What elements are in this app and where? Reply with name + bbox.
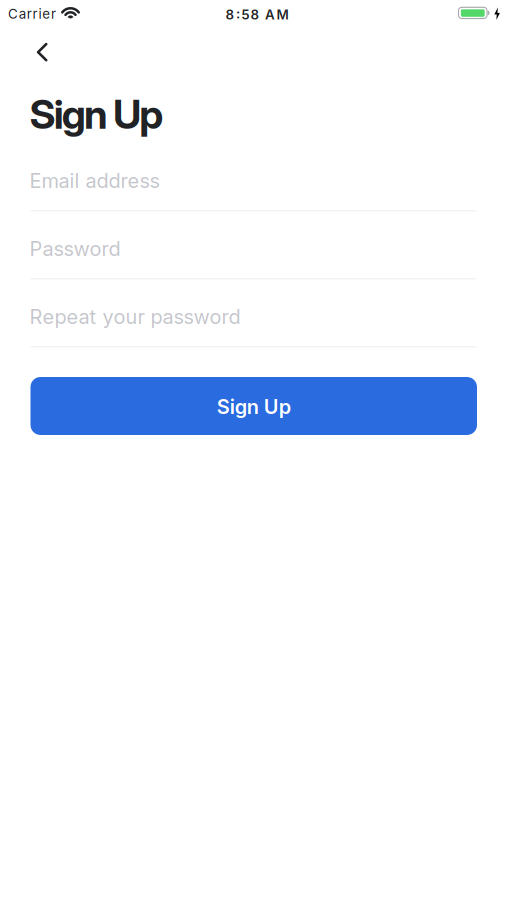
- textField[interactable]: Email address: [30, 168, 476, 211]
- staticText: Password: [29, 237, 120, 260]
- staticText: Repeat your password: [29, 305, 240, 328]
- staticText: Sign Up: [30, 91, 163, 138]
- staticText: Carrier: [8, 6, 56, 22]
- button[interactable]: Back: [30, 36, 54, 68]
- button[interactable]: Sign Up: [30, 377, 477, 435]
- staticText: Sign Up: [217, 395, 291, 418]
- staticText: 8:58 AM: [226, 7, 288, 22]
- textField[interactable]: Password: [30, 236, 476, 279]
- textField[interactable]: Repeat your password: [30, 304, 476, 347]
- staticText: Email address: [29, 169, 159, 192]
